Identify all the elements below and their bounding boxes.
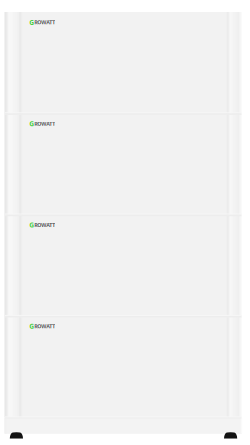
staticText: ROWATT: [34, 19, 55, 26]
staticText: G: [29, 220, 34, 229]
staticText: ROWATT: [34, 120, 55, 127]
staticText: G: [29, 18, 34, 27]
staticText: ROWATT: [34, 221, 55, 228]
staticText: G: [29, 119, 34, 128]
staticText: G: [29, 322, 34, 331]
staticText: ROWATT: [34, 323, 55, 330]
